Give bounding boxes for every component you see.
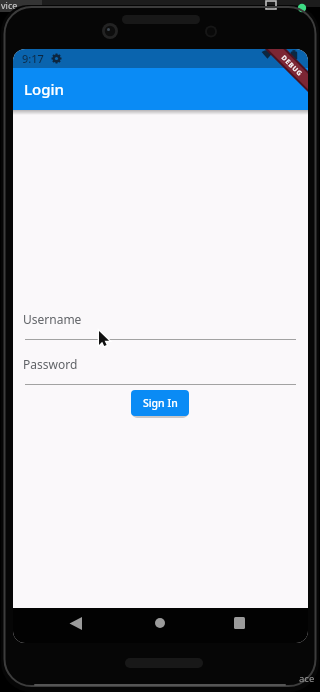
button[interactable] [23,350,297,385]
button[interactable] [23,305,297,340]
button[interactable] [234,617,245,629]
staticText: ace [299,672,315,685]
staticText: Login [24,79,64,99]
staticText: 9:17 [22,51,44,66]
staticText: Password [23,356,78,372]
staticText: DEBUG [280,53,305,79]
button[interactable]: Sign In [131,390,189,416]
staticText: Sign In [143,396,178,410]
staticText: vice [1,0,18,11]
button[interactable] [69,617,83,631]
button[interactable] [155,618,165,628]
staticText: Username [23,311,82,327]
